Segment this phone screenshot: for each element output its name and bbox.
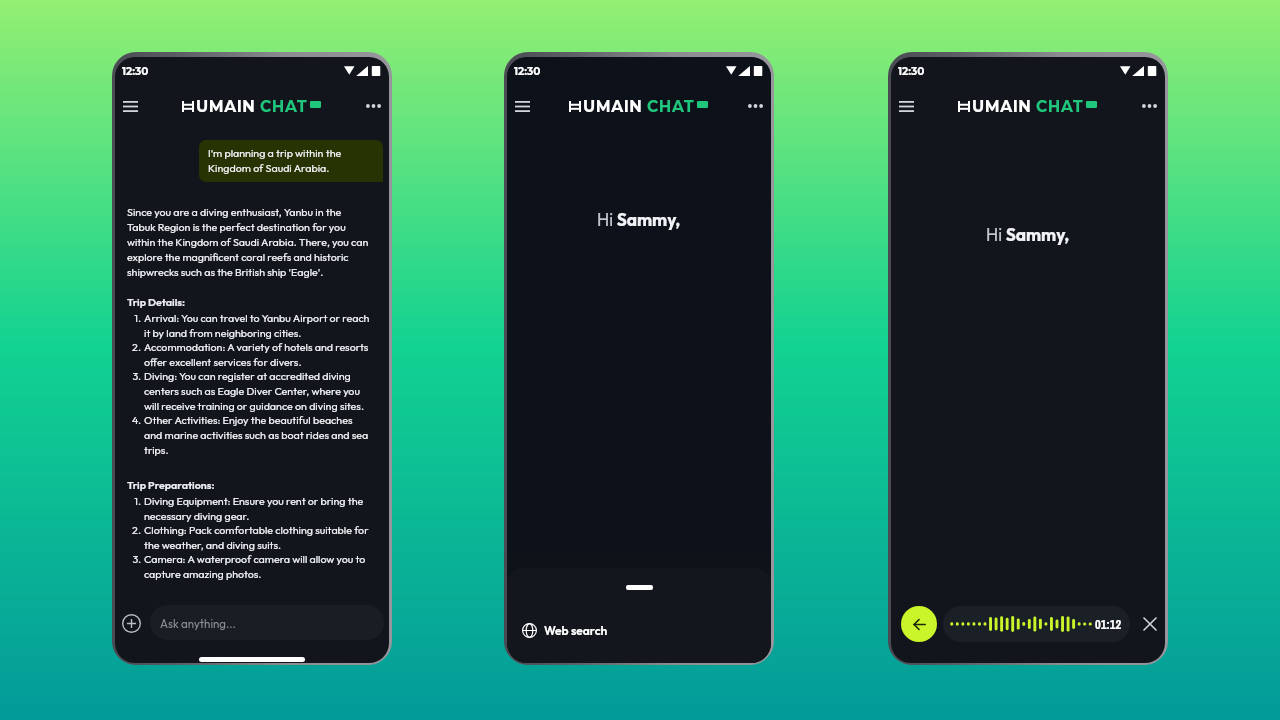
button[interactable]: Web search bbox=[507, 619, 771, 642]
staticText: 3. bbox=[128, 552, 141, 565]
staticText: 12:30 bbox=[898, 65, 925, 78]
button[interactable]: Back bbox=[901, 606, 937, 642]
button[interactable]: Add attachment bbox=[117, 609, 145, 637]
staticText: 12:30 bbox=[514, 65, 541, 78]
staticText: CHAT bbox=[1036, 97, 1084, 116]
button[interactable]: More options bbox=[742, 93, 768, 119]
staticText: Diving: You can register at accredited d… bbox=[144, 369, 370, 413]
staticText: Web search bbox=[544, 623, 608, 638]
button[interactable]: More options bbox=[1136, 93, 1162, 119]
staticText: 2. bbox=[128, 523, 141, 536]
staticText: 1. bbox=[128, 494, 141, 507]
staticText: UMAIN bbox=[583, 97, 643, 116]
button[interactable]: Menu bbox=[893, 93, 919, 119]
staticText: UMAIN bbox=[196, 97, 256, 116]
staticText: Diving Equipment: Ensure you rent or bri… bbox=[144, 494, 370, 523]
staticText: Hi Sammy, bbox=[986, 224, 1070, 246]
button[interactable]: More options bbox=[360, 93, 386, 119]
staticText: CHAT bbox=[647, 97, 695, 116]
staticText: 01:12 bbox=[1095, 616, 1122, 633]
staticText: Arrival: You can travel to Yanbu Airport… bbox=[144, 311, 370, 340]
button[interactable]: Menu bbox=[117, 93, 143, 119]
staticText: Clothing: Pack comfortable clothing suit… bbox=[144, 523, 370, 552]
staticText: CHAT bbox=[260, 97, 308, 116]
staticText: Other Activities: Enjoy the beautiful be… bbox=[144, 413, 370, 457]
staticText: 3. bbox=[128, 369, 141, 382]
staticText: Trip Details: bbox=[127, 295, 186, 308]
staticText: Camera: A waterproof camera will allow y… bbox=[144, 552, 370, 581]
staticText: Hi Sammy, bbox=[597, 209, 681, 231]
button[interactable]: Menu bbox=[509, 93, 535, 119]
staticText: UMAIN bbox=[972, 97, 1032, 116]
staticText: I'm planning a trip within the Kingdom o… bbox=[208, 146, 375, 175]
staticText: 1. bbox=[128, 311, 141, 324]
staticText: 2. bbox=[128, 340, 141, 353]
staticText: Ask anything... bbox=[160, 616, 236, 630]
staticText: Since you are a diving enthusiast, Yanbu… bbox=[127, 205, 370, 279]
button[interactable]: 01:12 bbox=[943, 606, 1130, 642]
staticText: 12:30 bbox=[122, 65, 149, 78]
staticText: Trip Preparations: bbox=[127, 478, 215, 491]
staticText: Accommodation: A variety of hotels and r… bbox=[144, 340, 370, 369]
button[interactable]: Cancel bbox=[1140, 614, 1160, 634]
staticText: 4. bbox=[128, 413, 141, 426]
button[interactable]: Ask anything... bbox=[150, 605, 384, 640]
